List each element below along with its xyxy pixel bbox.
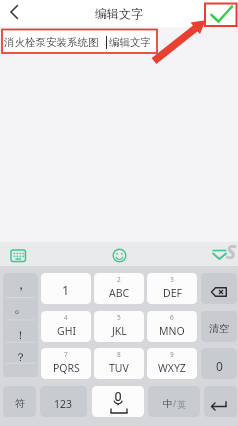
button[interactable]: 1 xyxy=(41,273,91,304)
staticText: / xyxy=(173,398,177,410)
button[interactable]: 0 xyxy=(201,348,237,379)
button[interactable] xyxy=(92,386,144,417)
staticText: 编辑文字 xyxy=(109,36,151,49)
button[interactable]: 9 xyxy=(147,348,197,379)
button[interactable]: 中 xyxy=(148,386,200,417)
staticText: 4 xyxy=(64,313,68,322)
staticText: ！ xyxy=(15,328,26,342)
staticText: 1 xyxy=(62,282,70,299)
staticText: PQRS xyxy=(53,361,80,375)
button[interactable] xyxy=(4,0,28,27)
staticText: 9 xyxy=(170,350,174,359)
staticText: TUV xyxy=(109,361,129,375)
button[interactable]: 3 xyxy=(147,273,197,304)
staticText: JKL xyxy=(112,324,127,338)
staticText: WXYZ xyxy=(158,361,186,375)
button[interactable] xyxy=(205,3,237,26)
button[interactable] xyxy=(206,242,233,266)
button[interactable] xyxy=(107,242,132,266)
button[interactable]: 清空 xyxy=(201,311,237,342)
staticText: 英 xyxy=(177,399,186,410)
button[interactable] xyxy=(201,273,237,304)
staticText: 8 xyxy=(117,350,121,359)
button[interactable]: 8 xyxy=(94,348,144,379)
staticText: GHI xyxy=(57,324,76,338)
staticText: 2 xyxy=(117,275,121,284)
button[interactable]: 5 xyxy=(94,311,144,342)
button[interactable] xyxy=(7,242,31,266)
staticText: 。 xyxy=(14,299,28,317)
staticText: S xyxy=(226,239,237,265)
button[interactable]: 符 xyxy=(3,386,36,417)
staticText: ， xyxy=(14,276,28,294)
staticText: 123 xyxy=(54,397,73,411)
staticText: 符 xyxy=(15,397,25,410)
button[interactable]: 消火栓泵安装系统图 xyxy=(2,30,157,54)
staticText: 消火栓泵安装系统图 xyxy=(4,36,99,49)
button[interactable]: 2 xyxy=(94,273,144,304)
button[interactable]: 7 xyxy=(41,348,91,379)
staticText: DEF xyxy=(163,286,182,300)
staticText: ？ xyxy=(15,350,26,364)
staticText: 中 xyxy=(163,398,173,410)
staticText: 5 xyxy=(117,313,121,322)
button[interactable]: 6 xyxy=(147,311,197,342)
button[interactable]: ， xyxy=(3,273,38,377)
staticText: MNO xyxy=(159,324,185,338)
staticText: 0 xyxy=(216,358,223,374)
button[interactable] xyxy=(204,386,237,417)
staticText: 3 xyxy=(170,275,174,284)
button[interactable]: 4 xyxy=(41,311,91,342)
staticText: 6 xyxy=(170,313,174,322)
staticText: 7 xyxy=(64,350,68,359)
staticText: ABC xyxy=(109,286,130,300)
staticText: 编辑文字 xyxy=(95,6,143,21)
staticText: 清空 xyxy=(209,322,229,335)
button[interactable]: 123 xyxy=(40,386,87,417)
